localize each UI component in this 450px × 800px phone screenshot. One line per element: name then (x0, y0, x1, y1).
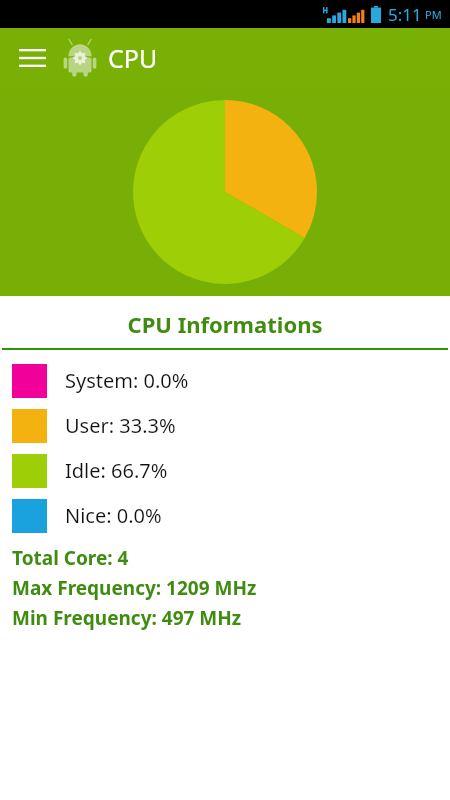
staticText: 5:11 (388, 3, 422, 26)
staticText: Total Core: 4 (12, 545, 129, 571)
staticText: PM (425, 7, 442, 22)
button[interactable]: System: 0.0% (0, 358, 450, 403)
button[interactable]: Open navigation drawer (14, 40, 50, 76)
staticText: CPU (108, 41, 158, 75)
staticText: CPU Informations (0, 309, 450, 339)
button[interactable]: User: 33.3% (0, 403, 450, 448)
staticText: Nice: 0.0% (65, 502, 162, 529)
staticText: User: 33.3% (65, 412, 176, 439)
staticText: Max Frequency: 1209 MHz (12, 575, 257, 601)
staticText: System: 0.0% (65, 367, 189, 394)
button[interactable]: Idle: 66.7% (0, 448, 450, 493)
staticText: Min Frequency: 497 MHz (12, 605, 242, 631)
staticText: Idle: 66.7% (65, 457, 168, 484)
button[interactable]: Nice: 0.0% (0, 493, 450, 538)
